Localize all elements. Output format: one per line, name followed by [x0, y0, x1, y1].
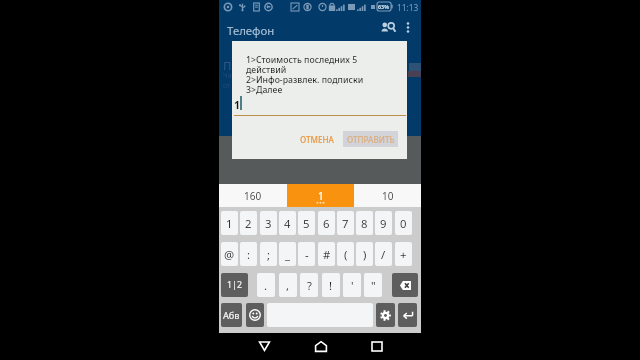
staticText: @ — [224, 247, 235, 262]
button[interactable]: " — [364, 273, 382, 297]
button[interactable]: 8 — [356, 211, 373, 235]
button[interactable]: ; — [260, 242, 277, 266]
staticText: - — [305, 247, 309, 262]
button[interactable]: + — [395, 242, 412, 266]
button[interactable]: - — [298, 242, 315, 266]
button[interactable]: Search contacts — [381, 21, 396, 34]
staticText: 11:13 — [397, 2, 419, 13]
button[interactable]: ? — [300, 273, 318, 297]
button[interactable]: : — [240, 242, 257, 266]
button[interactable]: / — [375, 242, 392, 266]
button[interactable]: 7 — [337, 211, 354, 235]
staticText: 8 — [361, 216, 368, 231]
button[interactable]: 1|2 — [221, 273, 248, 297]
button[interactable]: Settings — [376, 303, 395, 327]
staticText: 3 — [265, 216, 272, 231]
button[interactable]: Backspace — [392, 273, 418, 297]
button[interactable]: 9 — [375, 211, 392, 235]
staticText: 1 — [226, 216, 233, 231]
staticText: от — [223, 81, 231, 91]
button[interactable]: ОТПРАВИТЬ — [343, 131, 398, 147]
button[interactable]: . — [257, 273, 275, 297]
button[interactable]: ' — [343, 273, 361, 297]
button[interactable]: 160 — [219, 184, 287, 207]
staticText: 1 — [318, 189, 324, 203]
button[interactable]: Recent apps — [367, 336, 387, 356]
staticText: 6 — [323, 216, 330, 231]
button[interactable]: 4 — [279, 211, 296, 235]
staticText: . — [264, 278, 268, 293]
staticText: 1 — [234, 98, 241, 112]
staticText: 9 — [380, 216, 387, 231]
staticText: ! — [329, 278, 333, 293]
staticText: ОТПРАВИТЬ — [347, 134, 395, 145]
staticText: ( — [344, 247, 348, 262]
button[interactable]: Enter — [398, 303, 417, 327]
staticText: 2 — [245, 216, 252, 231]
staticText: 5 — [303, 216, 310, 231]
staticText: _ — [285, 247, 291, 262]
button[interactable]: ОТМЕНА — [295, 131, 338, 148]
staticText: 10 — [382, 189, 394, 203]
button[interactable]: 3 — [260, 211, 277, 235]
staticText: ' — [351, 278, 354, 293]
button[interactable]: ) — [356, 242, 373, 266]
staticText: # — [323, 247, 331, 262]
button[interactable]: 2 — [240, 211, 257, 235]
staticText: По — [223, 58, 239, 74]
staticText: ; — [267, 247, 271, 262]
button[interactable]: 5 — [298, 211, 315, 235]
staticText: 7 — [342, 216, 349, 231]
button[interactable]: Абв — [221, 303, 242, 327]
button[interactable]: _ — [279, 242, 296, 266]
button[interactable]: 0 — [395, 211, 412, 235]
button[interactable]: 1 — [221, 211, 238, 235]
staticText: 1>Стоимость последних 5 действий 2>Инфо-… — [246, 54, 364, 96]
staticText: 63% — [378, 3, 390, 10]
button[interactable]: Back — [254, 336, 274, 356]
button[interactable]: Home — [311, 336, 331, 356]
button[interactable]: ( — [337, 242, 354, 266]
button[interactable]: # — [318, 242, 335, 266]
staticText: " — [371, 278, 376, 293]
staticText: ? — [307, 278, 312, 293]
staticText: , — [286, 278, 290, 293]
button[interactable]: ! — [322, 273, 340, 297]
staticText: Телефон — [227, 23, 275, 39]
button[interactable]: 10 — [354, 184, 421, 207]
staticText: : — [247, 247, 251, 262]
button[interactable]: , — [279, 273, 297, 297]
button[interactable]: 6 — [318, 211, 335, 235]
staticText: 160 — [244, 189, 262, 203]
staticText: Ча — [223, 71, 232, 81]
staticText: ) — [363, 247, 367, 262]
staticText: / — [381, 247, 386, 262]
button[interactable]: 1 — [287, 184, 354, 207]
button[interactable]: @ — [221, 242, 238, 266]
button[interactable]: Emoji — [246, 303, 264, 327]
button[interactable]: More options — [403, 20, 413, 35]
staticText: + — [400, 247, 407, 262]
staticText: 0 — [400, 216, 407, 231]
staticText: 4 — [284, 216, 291, 231]
staticText: 1|2 — [227, 279, 242, 291]
staticText: Абв — [223, 309, 240, 322]
staticText: ОТМЕНА — [300, 134, 334, 145]
